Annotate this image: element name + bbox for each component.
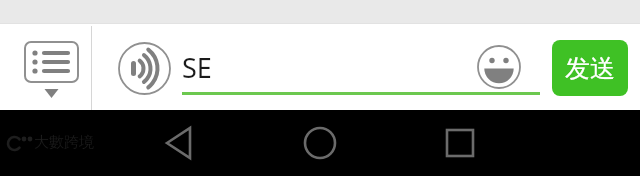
button[interactable]: Emoji	[476, 44, 522, 90]
staticText: 大數跨境	[34, 133, 94, 152]
staticText: 发送	[565, 53, 615, 84]
button[interactable]: Voice input	[117, 41, 172, 96]
button[interactable]: Recent apps	[432, 127, 488, 159]
button[interactable]: Home	[292, 127, 348, 159]
button[interactable]: Quick replies	[14, 32, 90, 104]
staticText: SE	[182, 49, 212, 86]
button[interactable]: Back	[152, 127, 208, 159]
button[interactable]: SE	[182, 45, 482, 89]
button[interactable]: 发送	[552, 40, 628, 96]
